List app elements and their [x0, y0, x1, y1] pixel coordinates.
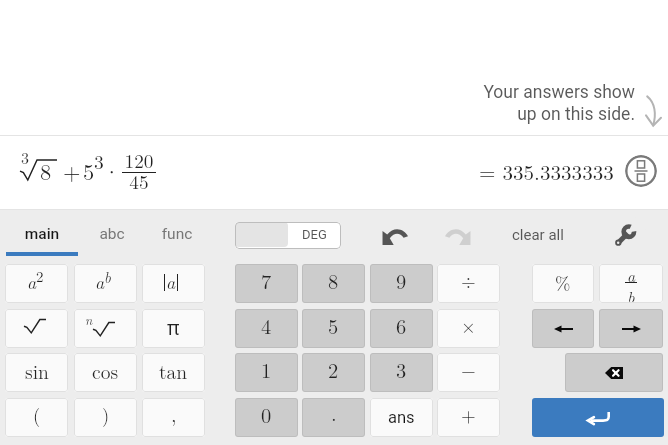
staticText: + — [63, 155, 81, 187]
staticText: ÷ — [461, 273, 476, 292]
staticText: 5 — [328, 311, 339, 340]
button[interactable]: ans — [370, 398, 433, 437]
button[interactable]: 4 — [235, 309, 298, 348]
staticText: 2 — [328, 355, 339, 384]
button[interactable]: Toggle fraction display — [625, 155, 657, 187]
button[interactable]: tan — [142, 353, 205, 392]
button[interactable]: Backspace — [565, 353, 663, 392]
button[interactable]: 0 — [235, 398, 298, 437]
button[interactable]: 6 — [370, 309, 433, 348]
button[interactable]: main — [6, 210, 78, 257]
staticText: 8 — [328, 266, 339, 295]
staticText: × — [461, 318, 476, 337]
staticText: + — [461, 407, 476, 426]
staticText: clear all — [512, 226, 564, 244]
button[interactable]: 5 — [302, 309, 365, 348]
staticText: b — [104, 266, 111, 287]
staticText: abc — [76, 225, 148, 243]
staticText: 8 — [40, 155, 52, 187]
button[interactable]: 2 — [302, 353, 365, 392]
staticText: 9 — [396, 266, 407, 295]
staticText: main — [6, 225, 78, 243]
staticText: 3 — [94, 147, 104, 175]
staticText: 45 — [122, 167, 156, 194]
staticText: func — [141, 225, 213, 243]
button[interactable]: − — [437, 353, 500, 392]
button[interactable]: cos — [74, 353, 137, 392]
button[interactable]: sin — [5, 353, 68, 392]
button[interactable]: % — [532, 264, 594, 303]
staticText: 4 — [261, 311, 272, 340]
staticText: ) — [102, 401, 110, 427]
button[interactable]: clear all — [505, 222, 571, 248]
staticText: 7 — [261, 266, 272, 295]
staticText: 2 — [36, 265, 44, 286]
button[interactable]: 1 — [235, 353, 298, 392]
staticText: sin — [25, 357, 49, 385]
button[interactable]: Redo — [444, 226, 471, 246]
staticText: = 335.3333333 — [479, 156, 614, 186]
staticText: . — [331, 398, 337, 427]
button[interactable]: + — [437, 398, 500, 437]
button[interactable]: 9 — [370, 264, 433, 303]
staticText: ans — [388, 408, 415, 427]
button[interactable]: nth root — [74, 309, 137, 348]
staticText: b — [620, 285, 642, 303]
staticText: 3 — [396, 355, 407, 384]
button[interactable]: func — [141, 210, 213, 257]
button[interactable]: Radians — [235, 222, 288, 247]
button[interactable]: Enter — [532, 398, 664, 437]
button[interactable]: ( — [5, 398, 68, 437]
staticText: 5 — [83, 155, 95, 187]
staticText: Your answers show up on this side. — [0, 82, 635, 124]
button[interactable]: Undo — [381, 226, 408, 246]
button[interactable]: DEG — [288, 222, 341, 247]
staticText: a — [166, 269, 176, 294]
button[interactable]: a to the power b — [74, 264, 137, 303]
staticText: n — [85, 310, 93, 328]
staticText: 1 — [261, 355, 272, 384]
button[interactable]: 8 — [302, 264, 365, 303]
staticText: % — [555, 269, 571, 295]
staticText: 120 — [122, 146, 156, 173]
button[interactable]: 3 — [370, 353, 433, 392]
button[interactable]: square root — [5, 309, 68, 348]
button[interactable]: 7 — [235, 264, 298, 303]
button[interactable]: Settings — [613, 224, 639, 246]
button[interactable]: absolute value of a — [142, 264, 205, 303]
button[interactable]: fraction a over b — [599, 264, 663, 303]
staticText: ( — [33, 401, 41, 427]
button[interactable]: × — [437, 309, 500, 348]
staticText: DEG — [302, 227, 327, 242]
staticText: · — [103, 155, 121, 187]
staticText: 6 — [396, 311, 407, 340]
staticText: 3 — [21, 146, 30, 169]
staticText: a — [27, 269, 37, 294]
staticText: 0 — [261, 400, 272, 429]
staticText: a — [620, 264, 642, 287]
button[interactable]: . — [302, 398, 365, 437]
button[interactable]: pi — [142, 309, 205, 348]
staticText: a — [95, 269, 105, 294]
staticText: , — [171, 399, 177, 427]
button[interactable]: a squared — [5, 264, 68, 303]
button[interactable]: ) — [74, 398, 137, 437]
button[interactable]: , — [142, 398, 205, 437]
staticText: π — [167, 315, 180, 341]
button[interactable]: abc — [76, 210, 148, 257]
staticText: − — [461, 362, 476, 381]
staticText: tan — [159, 357, 188, 385]
staticText: cos — [92, 357, 119, 385]
button[interactable]: ÷ — [437, 264, 500, 303]
button[interactable]: Move cursor right — [599, 309, 663, 348]
button[interactable]: Move cursor left — [532, 309, 594, 348]
